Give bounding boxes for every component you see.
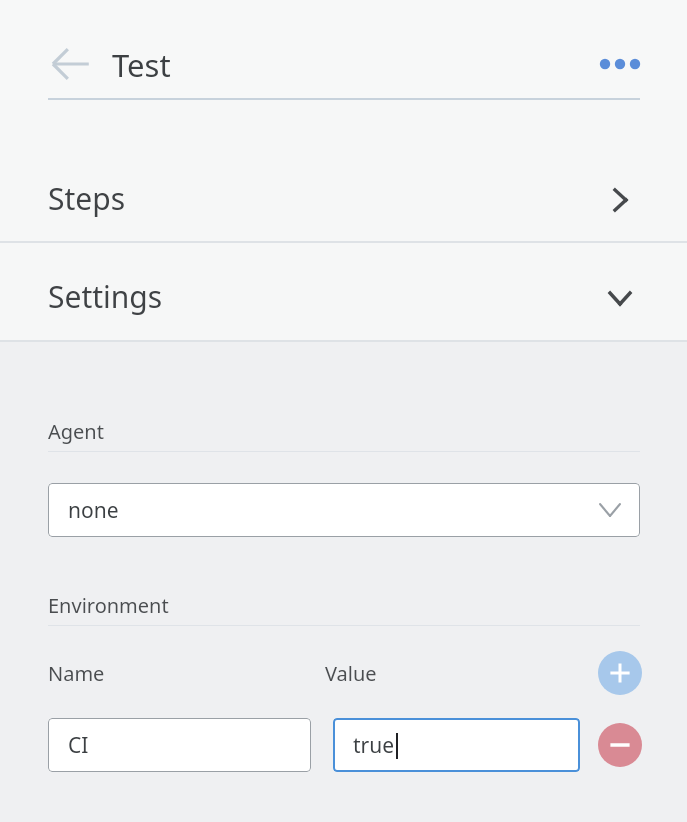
staticText: Environment: [48, 592, 169, 619]
button[interactable]: Add variable: [598, 651, 642, 695]
staticText: true: [353, 731, 395, 760]
button[interactable]: More options: [592, 40, 648, 88]
staticText: Settings: [48, 276, 163, 317]
button[interactable]: none: [48, 483, 640, 537]
button[interactable]: true: [333, 718, 580, 772]
staticText: Steps: [48, 178, 126, 219]
staticText: Agent: [48, 418, 104, 445]
button[interactable]: Back: [44, 40, 100, 88]
button[interactable]: Remove variable: [598, 723, 642, 767]
staticText: CI: [68, 731, 89, 760]
button[interactable]: Settings: [0, 243, 687, 340]
staticText: Value: [325, 660, 377, 687]
staticText: none: [68, 496, 119, 525]
button[interactable]: Steps: [0, 100, 687, 241]
staticText: Name: [48, 660, 105, 687]
button[interactable]: CI: [48, 718, 311, 772]
staticText: Test: [112, 44, 171, 86]
